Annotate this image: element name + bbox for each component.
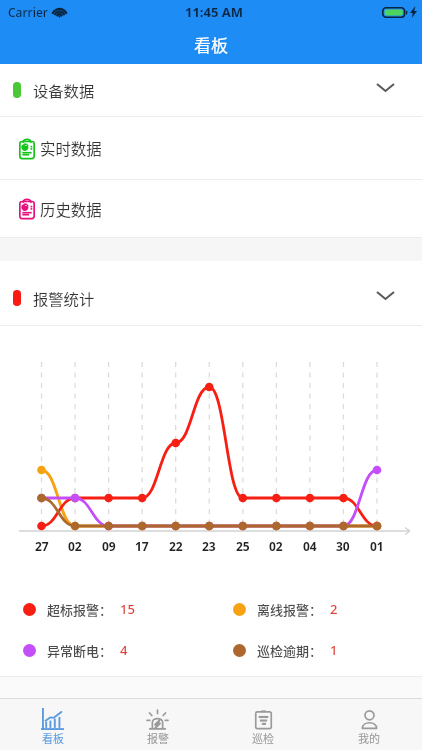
staticText: 22	[169, 538, 183, 554]
staticText: 巡检逾期：	[257, 641, 323, 660]
staticText: 巡检	[252, 730, 274, 746]
other: 报警	[147, 709, 168, 730]
other: Battery	[382, 7, 407, 18]
staticText: 11:45 AM	[185, 3, 244, 21]
staticText: 30	[336, 538, 350, 554]
staticText: 04	[303, 538, 317, 554]
staticText: 设备数据	[33, 79, 95, 101]
staticText: 我的	[358, 730, 380, 746]
button[interactable]: 异常断电：	[23, 636, 128, 664]
button[interactable]: 巡检逾期：	[233, 636, 338, 664]
staticText: 1	[330, 641, 338, 659]
staticText: 看板	[194, 32, 228, 57]
other: 我的	[359, 709, 380, 730]
staticText: Carrier	[8, 4, 48, 20]
staticText: 离线报警：	[257, 600, 323, 619]
button[interactable]: 报警统计	[0, 261, 422, 325]
staticText: 超标报警：	[47, 600, 113, 619]
button[interactable]: 离线报警：	[233, 595, 338, 623]
button[interactable]: 超标报警：	[23, 595, 135, 623]
staticText: 实时数据	[40, 137, 102, 159]
button[interactable]: 我的	[316, 699, 422, 750]
staticText: 17	[135, 538, 149, 554]
other: 展开	[376, 83, 395, 92]
button[interactable]: 设备数据	[0, 64, 422, 116]
staticText: 看板	[42, 730, 64, 746]
button[interactable]: 历史数据	[0, 180, 422, 237]
button[interactable]: 实时数据	[0, 117, 422, 179]
staticText: 报警	[147, 730, 169, 746]
staticText: 23	[202, 538, 216, 554]
staticText: 2	[330, 600, 338, 618]
staticText: 25	[236, 538, 250, 554]
staticText: 02	[68, 538, 82, 554]
staticText: 15	[120, 600, 135, 618]
button[interactable]: 报警	[105, 699, 210, 750]
staticText: 27	[35, 538, 49, 554]
other: 展开	[376, 291, 395, 300]
staticText: 异常断电：	[47, 641, 113, 660]
staticText: 09	[102, 538, 116, 554]
staticText: 01	[370, 538, 384, 554]
staticText: 4	[120, 641, 128, 659]
other: 巡检	[253, 709, 274, 730]
staticText: 02	[269, 538, 283, 554]
staticText: 报警统计	[33, 287, 95, 309]
button[interactable]: 巡检	[210, 699, 316, 750]
button[interactable]: 看板	[0, 699, 105, 750]
staticText: 历史数据	[40, 198, 102, 220]
